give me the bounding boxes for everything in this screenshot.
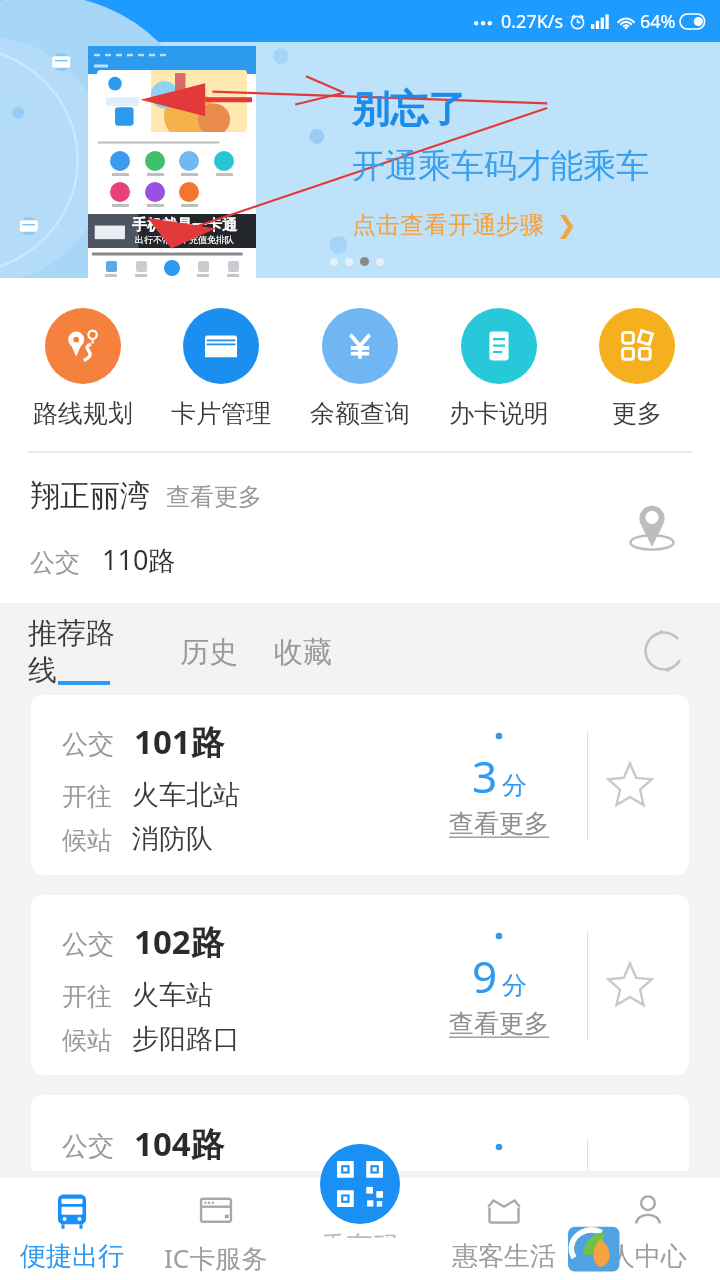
button[interactable]: 余额查询 [304, 308, 416, 429]
staticText: 惠客生活 [452, 1240, 556, 1273]
staticText: IC卡服务 [164, 1240, 268, 1276]
button[interactable]: 卡片管理 [165, 308, 277, 429]
button[interactable]: 公交 [31, 895, 689, 1075]
button[interactable]: 定位 [616, 492, 688, 564]
staticText: 推荐路 [28, 615, 115, 652]
button[interactable]: 3 [437, 732, 561, 839]
staticText: 开往 [62, 781, 112, 812]
staticText: 路线规划 [33, 398, 133, 429]
staticText: 9 [472, 946, 498, 1006]
staticText: 0.27K/s [501, 9, 564, 34]
staticText: 线 [28, 652, 57, 689]
staticText: 便捷出行 [20, 1240, 124, 1273]
staticText: 候站 [62, 825, 112, 856]
button[interactable]: 惠客生活 [432, 1178, 576, 1280]
staticText: 分 [502, 970, 527, 1001]
button[interactable]: 乘车码 [298, 1136, 422, 1238]
button[interactable]: 翔正丽湾 [0, 453, 720, 603]
staticText: 104路 [134, 1121, 224, 1166]
staticText: 公交 [30, 547, 80, 578]
button[interactable]: 公交 [31, 695, 689, 875]
button[interactable]: 公交 [31, 1095, 689, 1171]
staticText: 点击查看开通步骤 ❯ [352, 207, 577, 240]
staticText: 步阳路口 [132, 1022, 240, 1056]
staticText: 手机就是一卡通 [132, 216, 237, 235]
button[interactable]: 办卡说明 [443, 308, 555, 429]
button[interactable]: 收藏 [595, 950, 665, 1020]
staticText: 3 [472, 746, 498, 806]
button[interactable]: 历史 [176, 634, 242, 671]
button[interactable]: 更多 [581, 308, 693, 429]
staticText: 110路 [102, 541, 176, 578]
staticText: 火车北站 [132, 778, 240, 812]
button[interactable]: 9 [437, 932, 561, 1039]
button[interactable]: 收藏 [595, 750, 665, 820]
staticText: 查看更多 [166, 482, 262, 512]
staticText: 开通乘车码才能乘车 [352, 145, 649, 187]
button[interactable]: 手机就是一卡通 [0, 42, 720, 278]
staticText: 101路 [134, 719, 224, 764]
staticText: 余额查询 [310, 398, 410, 429]
button[interactable]: IC卡服务 [144, 1178, 288, 1280]
button[interactable]: 推荐路 [28, 615, 124, 689]
staticText: 消防队 [132, 822, 213, 856]
staticText: 出行不带卡，充值免排队 [135, 234, 234, 245]
staticText: 翔正丽湾 [30, 477, 150, 515]
staticText: 公交 [62, 728, 114, 761]
staticText: 火车站 [132, 978, 213, 1012]
staticText: 候站 [62, 1025, 112, 1056]
staticText: 别忘了 [352, 85, 466, 133]
staticText: 查看更多 [449, 808, 549, 839]
staticText: 64% [640, 9, 676, 34]
staticText: 收藏 [274, 634, 332, 671]
staticText: 办卡说明 [449, 398, 549, 429]
staticText: 更多 [612, 398, 662, 429]
button[interactable]: 刷新 [632, 619, 696, 683]
staticText: 乘车码 [321, 1230, 399, 1238]
staticText: 历史 [180, 634, 238, 671]
staticText: 102路 [134, 919, 224, 964]
staticText: 分 [502, 770, 527, 801]
button[interactable]: 路线规划 [27, 308, 139, 429]
staticText: 卡片管理 [171, 398, 271, 429]
button[interactable]: 收藏 [270, 634, 336, 671]
staticText: 公交 [62, 928, 114, 961]
staticText: 开往 [62, 981, 112, 1012]
staticText: 查看更多 [449, 1008, 549, 1039]
staticText: 人中心 [609, 1240, 687, 1273]
staticText: 公交 [62, 1130, 114, 1163]
button[interactable]: 便捷出行 [0, 1178, 144, 1280]
button[interactable]: 人中心 [576, 1178, 720, 1280]
